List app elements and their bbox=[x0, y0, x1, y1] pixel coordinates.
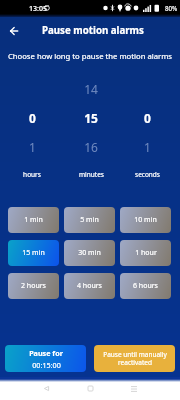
button[interactable]: 15 min bbox=[8, 240, 59, 266]
button[interactable]: 5 min bbox=[64, 207, 115, 233]
button[interactable]: Recent apps bbox=[121, 379, 146, 398]
button[interactable]: Back bbox=[2, 20, 25, 42]
staticText: 0 bbox=[144, 110, 151, 126]
staticText: Pause motion alarms bbox=[42, 24, 144, 37]
staticText: hours bbox=[23, 170, 41, 179]
staticText: 1 bbox=[29, 139, 36, 155]
staticText: Choose how long to pause the motion alar… bbox=[0, 51, 180, 61]
button[interactable]: 1 min bbox=[8, 207, 59, 233]
button[interactable]: Back bbox=[34, 379, 59, 398]
staticText: minutes bbox=[79, 170, 104, 179]
staticText: Pause until manually reactivated bbox=[103, 350, 167, 367]
button[interactable]: 1 hour bbox=[120, 240, 171, 266]
staticText: 4 hours bbox=[77, 281, 102, 291]
button[interactable]: 10 min bbox=[120, 207, 171, 233]
staticText: 00:15:00 bbox=[32, 360, 61, 370]
staticText: 2 hours bbox=[21, 281, 46, 291]
button[interactable]: Home bbox=[77, 379, 103, 398]
staticText: 13:05 bbox=[29, 4, 47, 14]
staticText: 6 hours bbox=[133, 281, 158, 291]
staticText: 1 hour bbox=[135, 248, 157, 258]
staticText: seconds bbox=[135, 170, 160, 179]
staticText: 1 bbox=[144, 139, 151, 155]
staticText: 15 min bbox=[22, 248, 45, 258]
staticText: 14 bbox=[84, 81, 98, 97]
button[interactable]: 6 hours bbox=[120, 273, 171, 299]
staticText: 0 bbox=[29, 110, 36, 126]
staticText: 30 min bbox=[78, 248, 101, 258]
button[interactable]: 4 hours bbox=[64, 273, 115, 299]
staticText: 16 bbox=[84, 139, 98, 155]
staticText: 10 min bbox=[134, 215, 157, 225]
button[interactable]: Pause until manually reactivated bbox=[94, 345, 175, 372]
button[interactable]: 2 hours bbox=[8, 273, 59, 299]
staticText: 80% bbox=[165, 4, 178, 12]
staticText: 5 min bbox=[80, 215, 99, 225]
button[interactable]: 30 min bbox=[64, 240, 115, 266]
staticText: 1 min bbox=[24, 215, 43, 225]
staticText: 15 bbox=[84, 110, 98, 126]
staticText: Pause for bbox=[29, 348, 63, 358]
button[interactable]: Pause for bbox=[5, 345, 86, 372]
